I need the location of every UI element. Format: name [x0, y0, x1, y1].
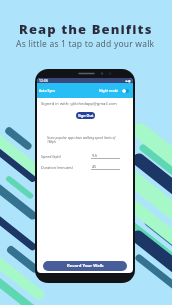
staticText: Some popular apps have walking speed lim…: [47, 136, 123, 144]
staticText: 45: [92, 164, 97, 169]
staticText: ◂▸●: [125, 79, 131, 82]
staticText: Sign Out: [78, 113, 94, 118]
button[interactable]: Night mode toggle: [122, 89, 129, 93]
staticText: Speed (kph): [41, 154, 61, 159]
staticText: Reap the Benifits: [19, 20, 153, 38]
staticText: 12:06: [39, 78, 48, 83]
button[interactable]: Auto Sync: [37, 83, 133, 98]
staticText: Auto Sync: [39, 88, 56, 93]
staticText: Duration (minutes): [41, 165, 73, 170]
staticText: Signed in with: glitchedapp@gmail.com: [41, 101, 117, 107]
staticText: 9.6: [92, 153, 98, 158]
staticText: Night mode: [99, 88, 119, 93]
button[interactable]: Sign Out: [76, 112, 95, 119]
button[interactable]: Record Your Walk: [43, 261, 127, 271]
staticText: Record Your Walk: [67, 263, 104, 269]
staticText: As little as 1 tap to add your walk: [16, 38, 155, 50]
